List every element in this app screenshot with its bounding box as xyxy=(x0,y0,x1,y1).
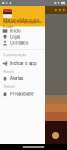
staticText: Início xyxy=(10,28,21,34)
staticText: Alertas xyxy=(10,76,23,81)
button[interactable]: Privacidade xyxy=(0,90,45,97)
staticText: Termos xyxy=(3,84,15,89)
button[interactable]: Contatos xyxy=(0,39,45,46)
staticText: Avisos xyxy=(3,69,14,74)
staticText: Privacidade xyxy=(10,91,33,97)
button[interactable]: Alertas xyxy=(0,75,45,82)
staticText: Indicar o app xyxy=(10,61,37,66)
staticText: mariana.marques@email.com xyxy=(3,20,42,28)
button[interactable]: Início xyxy=(0,27,45,34)
staticText: Comunicação xyxy=(3,53,26,57)
button[interactable]: Indicar o app xyxy=(0,60,45,67)
staticText: Lojas xyxy=(10,34,20,40)
staticText: Mariana Marques xyxy=(3,18,39,23)
staticText: Contatos xyxy=(10,40,28,46)
button[interactable]: Lojas xyxy=(0,33,45,40)
